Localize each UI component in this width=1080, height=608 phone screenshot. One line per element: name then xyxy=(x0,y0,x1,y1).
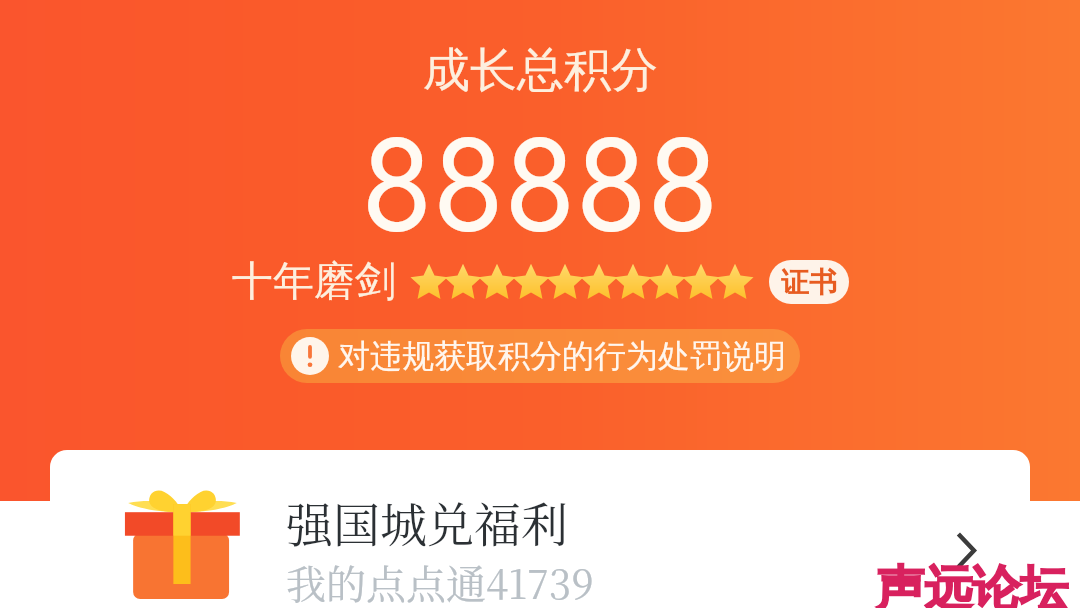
button[interactable]: 更多 xyxy=(926,510,1006,590)
button[interactable]: 强国城兑福利 xyxy=(50,450,1030,608)
staticText: 声远论坛 xyxy=(876,559,1068,608)
staticText: 强国城兑福利 xyxy=(286,488,568,556)
button[interactable]: 证书 xyxy=(769,260,849,304)
staticText: 十年磨剑 xyxy=(232,256,396,308)
button[interactable]: 对违规获取积分的行为处罚说明 xyxy=(280,329,800,383)
staticText: 我的点点通41739 xyxy=(286,553,594,608)
staticText: 对违规获取积分的行为处罚说明 xyxy=(338,336,786,376)
staticText: 成长总积分 xyxy=(423,41,658,100)
staticText: 88888 xyxy=(361,91,719,280)
staticText: 证书 xyxy=(781,265,837,300)
